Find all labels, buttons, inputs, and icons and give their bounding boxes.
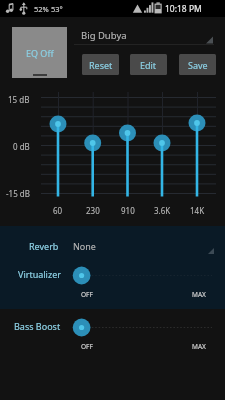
button[interactable]: Big Dubya xyxy=(74,24,214,46)
button[interactable]: Reset xyxy=(82,54,119,75)
staticText: 230 xyxy=(86,205,100,216)
staticText: 14K xyxy=(190,205,205,216)
staticText: MAX xyxy=(192,342,206,351)
staticText: Big Dubya xyxy=(81,29,127,42)
button[interactable]: EQ Off xyxy=(12,27,67,78)
staticText: Reset xyxy=(89,59,113,71)
staticText: Virtualizer xyxy=(18,268,61,280)
staticText: Bass Boost xyxy=(14,320,61,332)
staticText: 60 xyxy=(53,205,63,216)
staticText: Save xyxy=(188,59,208,71)
button[interactable]: None xyxy=(70,236,215,256)
button[interactable]: Bass Boost xyxy=(0,317,225,355)
button[interactable]: Virtualizer xyxy=(0,265,225,303)
staticText: 0 dB xyxy=(13,141,30,152)
staticText: OFF xyxy=(81,290,93,299)
button[interactable]: Save xyxy=(179,54,216,75)
staticText: Edit xyxy=(140,59,157,71)
staticText: 53° xyxy=(51,4,63,14)
staticText: OFF xyxy=(81,342,93,351)
button[interactable]: Edit xyxy=(130,54,167,75)
staticText: 15 dB xyxy=(8,94,30,105)
staticText: None xyxy=(73,240,96,252)
staticText: 52% xyxy=(34,4,49,14)
staticText: 3.6K xyxy=(154,205,171,216)
staticText: EQ Off xyxy=(26,47,54,59)
staticText: MAX xyxy=(192,290,206,299)
staticText: 910 xyxy=(121,205,135,216)
staticText: 10:18 PM xyxy=(165,3,202,15)
staticText: Reverb xyxy=(29,240,59,252)
staticText: -15 dB xyxy=(6,188,30,199)
